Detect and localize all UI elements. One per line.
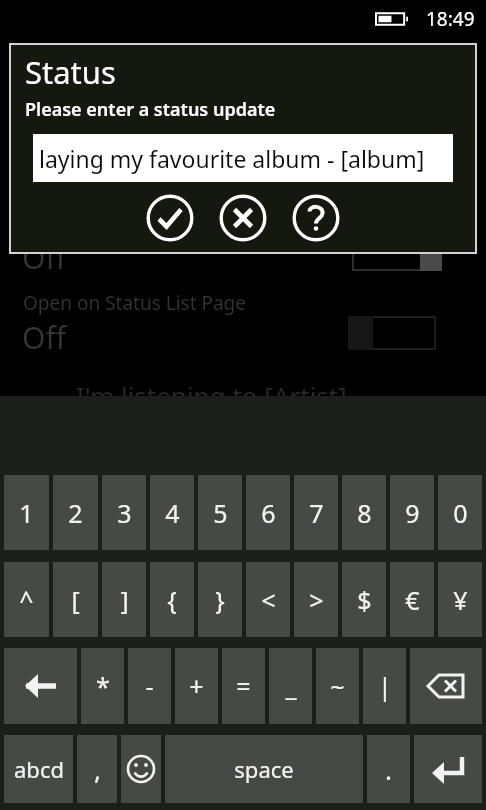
button[interactable]: 1 (4, 475, 49, 550)
button[interactable]: 5 (198, 475, 242, 550)
staticText: space (234, 754, 294, 784)
button[interactable]: abcd (4, 735, 73, 803)
button[interactable] (352, 243, 434, 271)
button[interactable]: ^ (4, 562, 49, 637)
button[interactable]: Shift (4, 648, 77, 724)
staticText: € (405, 583, 420, 617)
staticText: * (96, 669, 110, 703)
staticText: Please enter a status update (25, 97, 276, 122)
button[interactable]: Accept (146, 194, 194, 242)
button[interactable]: ~ (316, 648, 359, 724)
button[interactable]: space (165, 735, 363, 803)
staticText: [ (71, 583, 80, 617)
button[interactable]: ¥ (438, 562, 482, 637)
staticText: } (215, 583, 225, 617)
button[interactable]: ] (102, 562, 146, 637)
staticText: ~ (330, 669, 345, 703)
staticText: 5 (213, 496, 228, 530)
staticText: 8 (357, 496, 372, 530)
button[interactable]: + (175, 648, 218, 724)
staticText: Open on Status List Page (23, 290, 247, 316)
staticText: $ (357, 583, 372, 617)
staticText: + (189, 669, 204, 703)
staticText: 9 (405, 496, 420, 530)
staticText: Off (22, 317, 67, 358)
staticText: - (145, 669, 154, 703)
staticText: 3 (117, 496, 132, 530)
button[interactable]: Cancel (219, 194, 267, 242)
staticText: ^ (19, 583, 34, 617)
button[interactable]: | (363, 648, 406, 724)
staticText: 2 (68, 496, 83, 530)
button[interactable]: Help (292, 194, 340, 242)
staticText: 0 (453, 496, 468, 530)
staticText: = (236, 669, 251, 703)
button[interactable]: . (367, 735, 410, 803)
staticText: Off (22, 237, 67, 278)
staticText: _ (285, 669, 297, 703)
staticText: , (94, 752, 101, 787)
button[interactable]: 7 (294, 475, 338, 550)
staticText: | (378, 669, 392, 703)
button[interactable]: Emoji (121, 735, 161, 803)
staticText: 6 (261, 496, 276, 530)
button[interactable]: $ (342, 562, 386, 637)
button[interactable] (348, 316, 436, 350)
staticText: < (261, 583, 276, 617)
staticText: I'm listening to [Artist] (76, 378, 347, 413)
button[interactable]: < (246, 562, 290, 637)
button[interactable]: 9 (390, 475, 434, 550)
button[interactable]: [ (53, 562, 98, 637)
button[interactable]: > (294, 562, 338, 637)
staticText: ¥ (453, 583, 468, 617)
button[interactable]: 2 (53, 475, 98, 550)
staticText: laying my favourite album - [album] (39, 143, 425, 174)
staticText: 4 (165, 496, 180, 530)
button[interactable]: - (128, 648, 171, 724)
button[interactable]: 0 (438, 475, 482, 550)
staticText: 18:49 (426, 6, 475, 32)
staticText: > (309, 583, 324, 617)
button[interactable]: { (150, 562, 194, 637)
staticText: { (167, 583, 177, 617)
staticText: . (385, 752, 392, 787)
staticText: ] (120, 583, 129, 617)
button[interactable]: * (81, 648, 124, 724)
staticText: Status (25, 51, 116, 93)
button[interactable]: Backspace (410, 648, 482, 724)
button[interactable]: Enter (414, 735, 482, 803)
button[interactable]: laying my favourite album - [album] (33, 134, 453, 182)
button[interactable]: 4 (150, 475, 194, 550)
staticText: 1 (19, 496, 34, 530)
staticText: abcd (14, 754, 64, 784)
button[interactable]: = (222, 648, 265, 724)
button[interactable]: 3 (102, 475, 146, 550)
button[interactable]: € (390, 562, 434, 637)
button[interactable]: , (77, 735, 117, 803)
button[interactable]: _ (269, 648, 312, 724)
button[interactable]: 8 (342, 475, 386, 550)
staticText: 7 (309, 496, 324, 530)
button[interactable]: 6 (246, 475, 290, 550)
button[interactable]: } (198, 562, 242, 637)
